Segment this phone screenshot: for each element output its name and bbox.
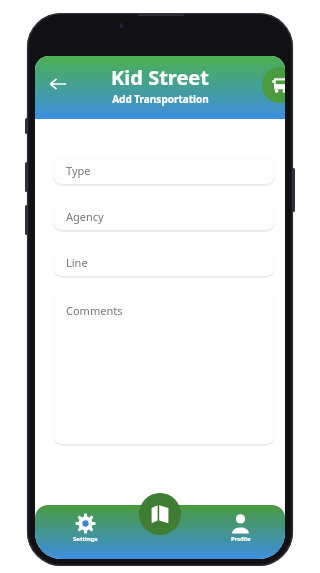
- staticText: Profile: [231, 535, 251, 543]
- button[interactable]: Comments: [53, 294, 275, 444]
- staticText: Agency: [66, 209, 104, 224]
- button[interactable]: Type: [53, 156, 275, 184]
- staticText: Kid Street: [111, 64, 209, 91]
- button[interactable]: Line: [53, 248, 275, 276]
- button[interactable]: Agency: [53, 202, 275, 230]
- button[interactable]: Transportation: [262, 67, 285, 103]
- button[interactable]: Settings: [73, 513, 98, 543]
- staticText: Add Transportation: [112, 92, 209, 106]
- button[interactable]: Map: [139, 493, 181, 535]
- button[interactable]: Profile: [230, 513, 251, 543]
- button[interactable]: Back: [43, 69, 73, 99]
- staticText: Line: [66, 255, 88, 270]
- staticText: Comments: [66, 303, 123, 318]
- staticText: Settings: [73, 535, 98, 543]
- staticText: Type: [66, 163, 91, 178]
